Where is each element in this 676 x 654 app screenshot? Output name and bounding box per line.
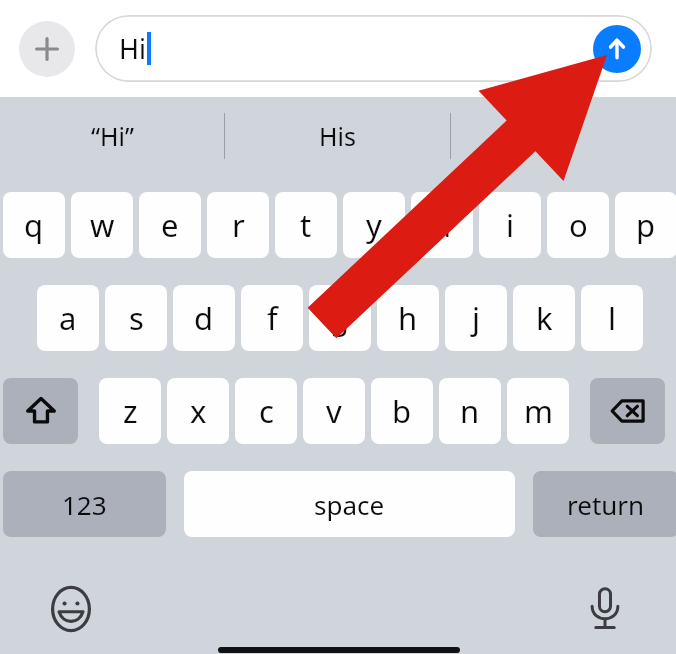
button[interactable]: x [167,378,229,444]
staticText: h [398,297,418,339]
button[interactable]: z [99,378,161,444]
button[interactable]: h [377,285,439,351]
staticText: l [608,297,616,339]
button[interactable]: n [439,378,501,444]
button[interactable]: Emoji [44,582,98,636]
button[interactable]: u [411,192,473,258]
button[interactable]: space [184,471,515,537]
button[interactable]: His [225,97,450,175]
staticText: y [366,204,382,246]
staticText: space [314,487,385,522]
button[interactable]: Dictate [578,582,632,636]
staticText: t [300,204,312,246]
button[interactable]: e [139,192,201,258]
button[interactable]: 123 [3,471,166,537]
staticText: “Hi” [91,119,134,153]
button[interactable]: s [105,285,167,351]
button[interactable]: w [71,192,133,258]
button[interactable]: Hi [95,15,652,82]
button[interactable]: i [479,192,541,258]
staticText: c [259,390,274,432]
staticText: 123 [62,487,107,522]
staticText: w [90,204,115,246]
button[interactable]: Shift [3,378,78,444]
staticText: x [190,390,207,432]
staticText: p [636,204,656,246]
button[interactable]: g [309,285,371,351]
staticText: b [392,390,412,432]
staticText: m [524,390,553,432]
button[interactable]: l [581,285,643,351]
button[interactable]: j [445,285,507,351]
staticText: s [129,297,144,339]
button[interactable]: c [235,378,297,444]
button[interactable]: b [371,378,433,444]
button[interactable]: p [615,192,676,258]
staticText: His [319,119,356,153]
staticText: k [536,297,553,339]
staticText: o [569,204,588,246]
button[interactable]: f [241,285,303,351]
button[interactable]: y [343,192,405,258]
staticText: e [161,204,179,246]
button[interactable]: v [303,378,365,444]
button[interactable]: Add attachment [19,21,75,77]
button[interactable]: return [533,471,676,537]
staticText: v [326,390,342,432]
staticText: n [460,390,480,432]
staticText: a [59,297,77,339]
button[interactable]: a [37,285,99,351]
staticText: j [472,297,480,339]
button[interactable]: d [173,285,235,351]
button[interactable] [451,97,676,175]
button[interactable]: k [513,285,575,351]
staticText: q [24,204,44,246]
button[interactable]: “Hi” [0,97,224,175]
staticText: return [567,487,645,522]
button[interactable]: m [507,378,569,444]
staticText: g [330,297,350,339]
staticText: d [194,297,214,339]
button[interactable]: Backspace [590,378,665,444]
staticText: f [267,297,278,339]
staticText: z [123,390,138,432]
staticText: i [506,204,514,246]
staticText: u [432,204,452,246]
button[interactable]: Send [593,25,641,73]
button[interactable]: q [3,192,65,258]
staticText: r [232,204,245,246]
button[interactable]: o [547,192,609,258]
button[interactable]: t [275,192,337,258]
button[interactable]: r [207,192,269,258]
staticText: Hi [119,30,146,67]
